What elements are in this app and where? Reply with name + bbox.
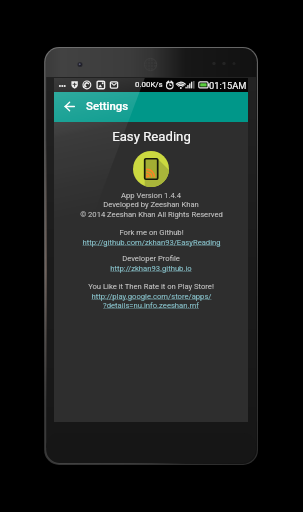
button[interactable]: ?details=nu.info.zeeshan.rnf — [54, 300, 248, 311]
staticText: Fork me on Github! — [119, 228, 184, 237]
staticText: 0.00K/s — [135, 80, 163, 89]
staticText: ?details=nu.info.zeeshan.rnf — [103, 301, 199, 310]
staticText: © 2014 Zeeshan Khan All Rights Reserved — [80, 210, 223, 219]
staticText: Developed by Zeeshan Khan — [103, 200, 199, 209]
staticText: App Version 1.4.4 — [121, 191, 181, 200]
staticText: http://github.com/zkhan93/EasyReading — [82, 238, 221, 247]
staticText: Easy Reading — [112, 129, 191, 144]
button[interactable]: http://play.google.com/store/apps/ — [54, 291, 248, 302]
staticText: Developer Profile — [122, 254, 180, 263]
button[interactable]: http://github.com/zkhan93/EasyReading — [54, 237, 248, 248]
button[interactable]: Back — [59, 96, 80, 117]
button[interactable]: http://zkhan93.github.io — [54, 263, 248, 274]
staticText: You Like it Then Rate it on Play Store! — [88, 282, 214, 291]
staticText: http://play.google.com/store/apps/ — [91, 292, 212, 301]
staticText: Settings — [86, 99, 129, 112]
staticText: 01:15AM — [209, 80, 247, 91]
staticText: http://zkhan93.github.io — [110, 264, 192, 273]
